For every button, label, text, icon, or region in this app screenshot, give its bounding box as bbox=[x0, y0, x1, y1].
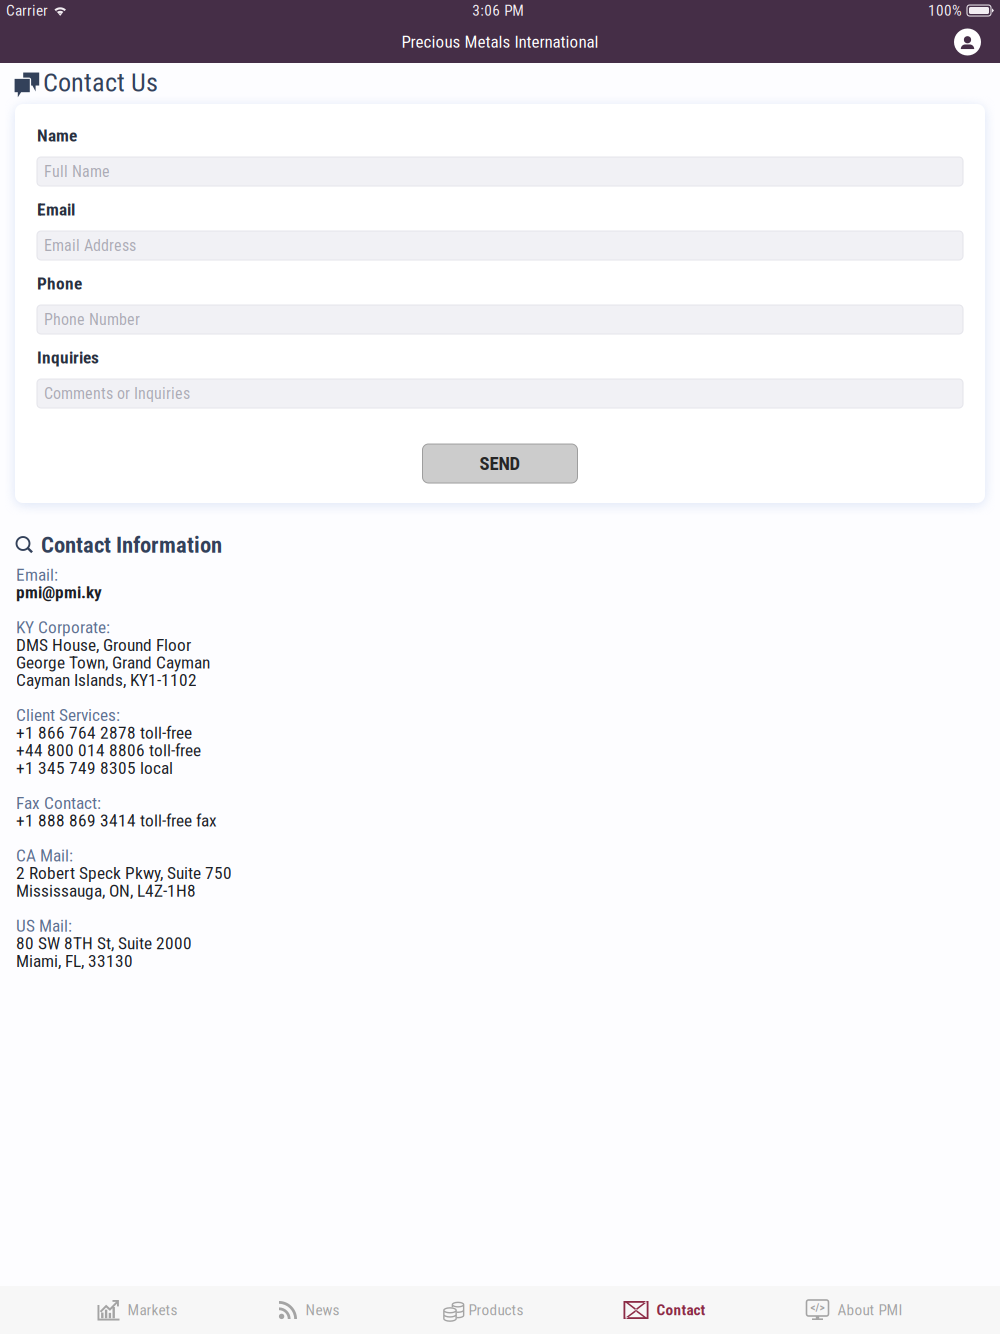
staticText: Precious Metals International bbox=[401, 32, 598, 52]
staticText: Full Name bbox=[44, 162, 110, 181]
staticText: Mississauga, ON, L4Z-1H8 bbox=[16, 881, 196, 901]
staticText: About PMI bbox=[837, 1301, 902, 1319]
staticText: +44 800 014 8806 toll-free bbox=[16, 740, 201, 760]
staticText: Products bbox=[468, 1301, 523, 1319]
staticText: Contact Information bbox=[41, 532, 222, 558]
staticText: Phone Number bbox=[44, 310, 140, 329]
staticText: Carrier bbox=[6, 1, 48, 19]
staticText: Comments or Inquiries bbox=[44, 384, 190, 403]
staticText: George Town, Grand Cayman bbox=[16, 652, 210, 673]
staticText: pmi@pmi.ky bbox=[16, 582, 102, 602]
staticText: SEND bbox=[479, 453, 520, 474]
staticText: Email bbox=[37, 199, 75, 220]
staticText: Name bbox=[37, 125, 77, 146]
staticText: KY Corporate: bbox=[16, 617, 110, 637]
staticText: Inquiries bbox=[37, 347, 99, 368]
button[interactable]: </> bbox=[799, 1286, 908, 1334]
staticText: Miami, FL, 33130 bbox=[16, 951, 133, 971]
button[interactable]: Products bbox=[433, 1286, 529, 1334]
staticText: Contact bbox=[656, 1301, 705, 1319]
staticText: DMS House, Ground Floor bbox=[16, 635, 191, 655]
staticText: Fax Contact: bbox=[16, 793, 101, 813]
staticText: Markets bbox=[127, 1301, 177, 1319]
staticText: Phone bbox=[37, 273, 82, 294]
button[interactable]: Contact bbox=[617, 1286, 711, 1334]
staticText: Contact Us bbox=[43, 67, 158, 98]
staticText: Email Address bbox=[44, 236, 136, 255]
staticText: +1 866 764 2878 toll-free bbox=[16, 723, 192, 743]
staticText: 80 SW 8TH St, Suite 2000 bbox=[16, 933, 192, 953]
staticText: Client Services: bbox=[16, 705, 120, 725]
button[interactable]: News bbox=[271, 1286, 345, 1334]
staticText: US Mail: bbox=[16, 916, 72, 936]
staticText: +1 888 869 3414 toll-free fax bbox=[16, 810, 217, 831]
staticText: 2 Robert Speck Pkwy, Suite 750 bbox=[16, 863, 232, 883]
staticText: News bbox=[305, 1301, 339, 1319]
staticText: Cayman Islands, KY1-1102 bbox=[16, 670, 197, 690]
button[interactable]: Account bbox=[944, 21, 1000, 62]
button[interactable]: SEND bbox=[422, 444, 577, 483]
staticText: 3:06 PM bbox=[472, 1, 524, 19]
button[interactable]: Markets bbox=[91, 1286, 183, 1334]
staticText: Email: bbox=[16, 565, 58, 585]
staticText: +1 345 749 8305 local bbox=[16, 758, 173, 778]
staticText: CA Mail: bbox=[16, 845, 73, 866]
staticText: 100% bbox=[928, 1, 962, 19]
staticText: </> bbox=[810, 1301, 824, 1314]
